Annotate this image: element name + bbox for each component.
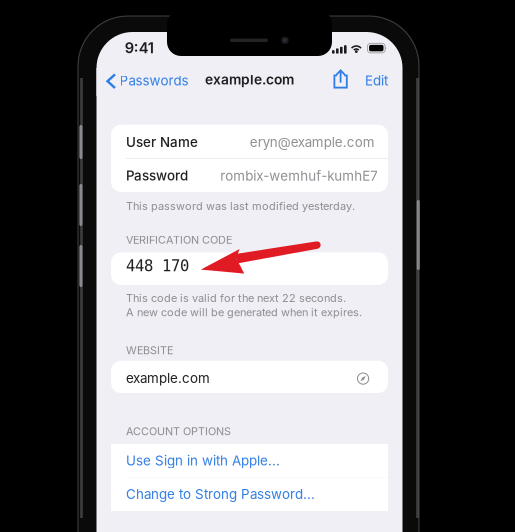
- staticText: ACCOUNT OPTIONS: [126, 425, 231, 438]
- staticText: 448 170: [126, 257, 189, 275]
- button[interactable]: Change to Strong Password...: [111, 478, 388, 511]
- staticText: This code is valid for the next 22 secon…: [126, 291, 346, 305]
- staticText: rombix-wemhuf-kumhE7: [220, 168, 378, 184]
- button[interactable]: Edit: [355, 68, 395, 96]
- staticText: 9:41: [125, 39, 154, 57]
- staticText: Password: [126, 167, 188, 184]
- staticText: Edit: [365, 73, 388, 89]
- staticText: Use Sign in with Apple...: [126, 452, 280, 469]
- staticText: VERIFICATION CODE: [126, 233, 232, 246]
- button[interactable]: Use Sign in with Apple...: [111, 444, 388, 477]
- staticText: WEBSITE: [126, 344, 173, 357]
- button[interactable]: Share: [325, 65, 355, 93]
- staticText: Change to Strong Password...: [126, 486, 315, 502]
- staticText: eryn@example.com: [250, 134, 375, 150]
- staticText: example.com: [126, 370, 210, 386]
- staticText: example.com: [205, 71, 294, 88]
- staticText: A new code will be generated when it exp…: [126, 306, 362, 319]
- button[interactable]: Open website: [357, 372, 370, 385]
- button[interactable]: Passwords: [96, 68, 192, 96]
- staticText: Passwords: [119, 73, 188, 89]
- staticText: User Name: [126, 134, 198, 150]
- staticText: This password was last modified yesterda…: [126, 199, 355, 213]
